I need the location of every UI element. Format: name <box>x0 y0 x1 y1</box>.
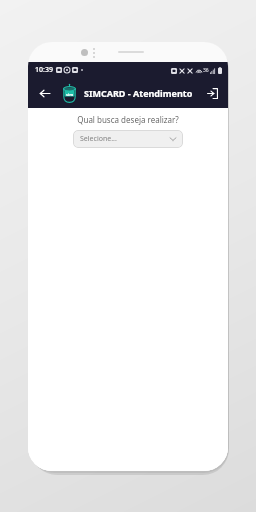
staticText: Selecione... <box>80 134 117 144</box>
button[interactable]: Logout <box>201 82 223 104</box>
button[interactable]: Back <box>32 81 56 105</box>
button[interactable]: Selecione... <box>73 130 183 148</box>
staticText: 36 <box>203 67 209 74</box>
staticText: Qual busca deseja realizar? <box>77 114 179 125</box>
staticText: sim <box>66 92 74 97</box>
staticText: SIMCARD - Atendimento <box>84 87 193 99</box>
button[interactable]: SIMCARD logo <box>62 83 77 103</box>
staticText: 10:39 <box>35 65 53 75</box>
